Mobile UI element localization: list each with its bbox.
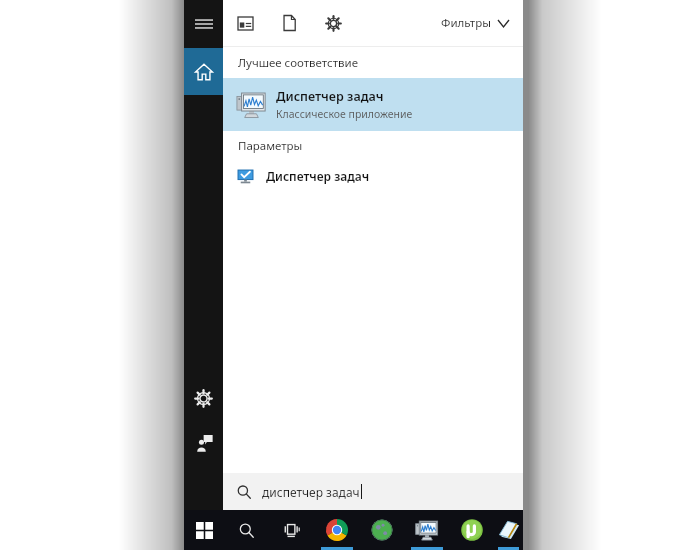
button[interactable]: Диспетчер задач bbox=[223, 78, 523, 131]
button[interactable]: Feedback bbox=[184, 419, 223, 467]
button[interactable]: Apps bbox=[223, 0, 267, 46]
button[interactable]: Settings bbox=[184, 377, 223, 419]
button[interactable]: Task Manager bbox=[404, 510, 449, 550]
button[interactable]: Documents bbox=[267, 0, 311, 46]
button[interactable]: Search bbox=[224, 510, 269, 550]
staticText: Классическое приложение bbox=[276, 107, 413, 121]
staticText: Фильтры bbox=[441, 15, 491, 31]
button[interactable]: Task view bbox=[269, 510, 314, 550]
button[interactable]: Home bbox=[184, 48, 223, 95]
staticText: Диспетчер задач bbox=[266, 168, 370, 184]
staticText: диспетчер задач bbox=[262, 484, 360, 500]
button[interactable]: Settings bbox=[311, 0, 355, 46]
button[interactable]: uTorrent bbox=[449, 510, 494, 550]
button[interactable]: Фильтры bbox=[441, 0, 523, 46]
button[interactable]: Start bbox=[184, 510, 224, 550]
button[interactable]: Google Chrome bbox=[314, 510, 359, 550]
button[interactable]: Диспетчер задач bbox=[223, 161, 523, 191]
button[interactable]: диспетчер задач bbox=[223, 473, 523, 510]
button[interactable]: Notes bbox=[494, 510, 523, 550]
button[interactable]: Browser bbox=[359, 510, 404, 550]
button[interactable]: Menu bbox=[184, 0, 223, 48]
staticText: Параметры bbox=[238, 138, 303, 154]
staticText: Диспетчер задач bbox=[276, 88, 384, 105]
staticText: Лучшее соответствие bbox=[238, 55, 358, 71]
